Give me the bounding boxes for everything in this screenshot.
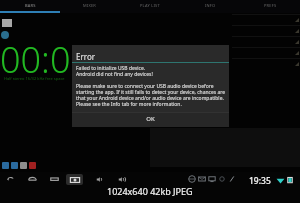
button[interactable]: Volume up xyxy=(117,174,128,185)
button[interactable]: Network xyxy=(188,175,196,183)
staticText: Android did not find any devices! xyxy=(76,71,153,78)
button[interactable]: PLAY LIST xyxy=(120,0,180,13)
staticText: PLAY LIST xyxy=(140,3,160,8)
button[interactable]: Stop xyxy=(20,162,27,169)
button[interactable]: OK xyxy=(72,112,229,127)
staticText: INFO xyxy=(205,3,216,8)
staticText: MIXER xyxy=(83,3,97,8)
button[interactable]: Back xyxy=(5,174,16,185)
button[interactable]: Play xyxy=(11,162,18,169)
staticText: 00:00:00.0 xyxy=(0,35,171,84)
button[interactable]: INFO xyxy=(180,0,240,13)
staticText: Error xyxy=(76,51,96,62)
button[interactable] xyxy=(232,47,300,58)
button[interactable] xyxy=(232,58,300,69)
button[interactable]: Mail xyxy=(198,175,206,183)
button[interactable]: Sync xyxy=(218,175,226,183)
staticText: 1024x640 42kb JPEG xyxy=(107,185,193,197)
staticText: Half stereo 16/32 kHz free space xyxy=(4,76,65,81)
staticText: OK xyxy=(146,115,155,123)
button[interactable] xyxy=(232,36,300,47)
button[interactable]: PREFS xyxy=(240,0,300,13)
staticText: PREFS xyxy=(264,3,277,8)
button[interactable] xyxy=(232,14,300,25)
button[interactable]: BARS xyxy=(0,0,60,13)
button[interactable]: Screenshot xyxy=(66,174,83,185)
staticText: starting the app. If it still fails to d… xyxy=(76,89,226,96)
staticText: 19:35 xyxy=(249,175,271,187)
staticText: Please make sure to connect your USB aud… xyxy=(76,83,214,90)
button[interactable]: Silent xyxy=(228,175,236,183)
button[interactable]: MIXER xyxy=(60,0,120,13)
button[interactable]: Home xyxy=(27,174,38,185)
button[interactable]: Record xyxy=(1,31,9,39)
staticText: that your Android device and/or audio de… xyxy=(76,95,224,102)
button[interactable]: Volume down xyxy=(95,174,106,185)
button[interactable]: Recent apps xyxy=(49,174,60,185)
button[interactable]: Display xyxy=(208,175,216,183)
staticText: Failed to initialize USB device. xyxy=(76,65,146,72)
button[interactable]: Previous xyxy=(2,162,9,169)
staticText: BARS xyxy=(25,3,36,8)
button[interactable]: Record xyxy=(29,162,36,169)
button[interactable] xyxy=(232,25,300,36)
staticText: Please see the Info tab for more informa… xyxy=(76,101,182,108)
